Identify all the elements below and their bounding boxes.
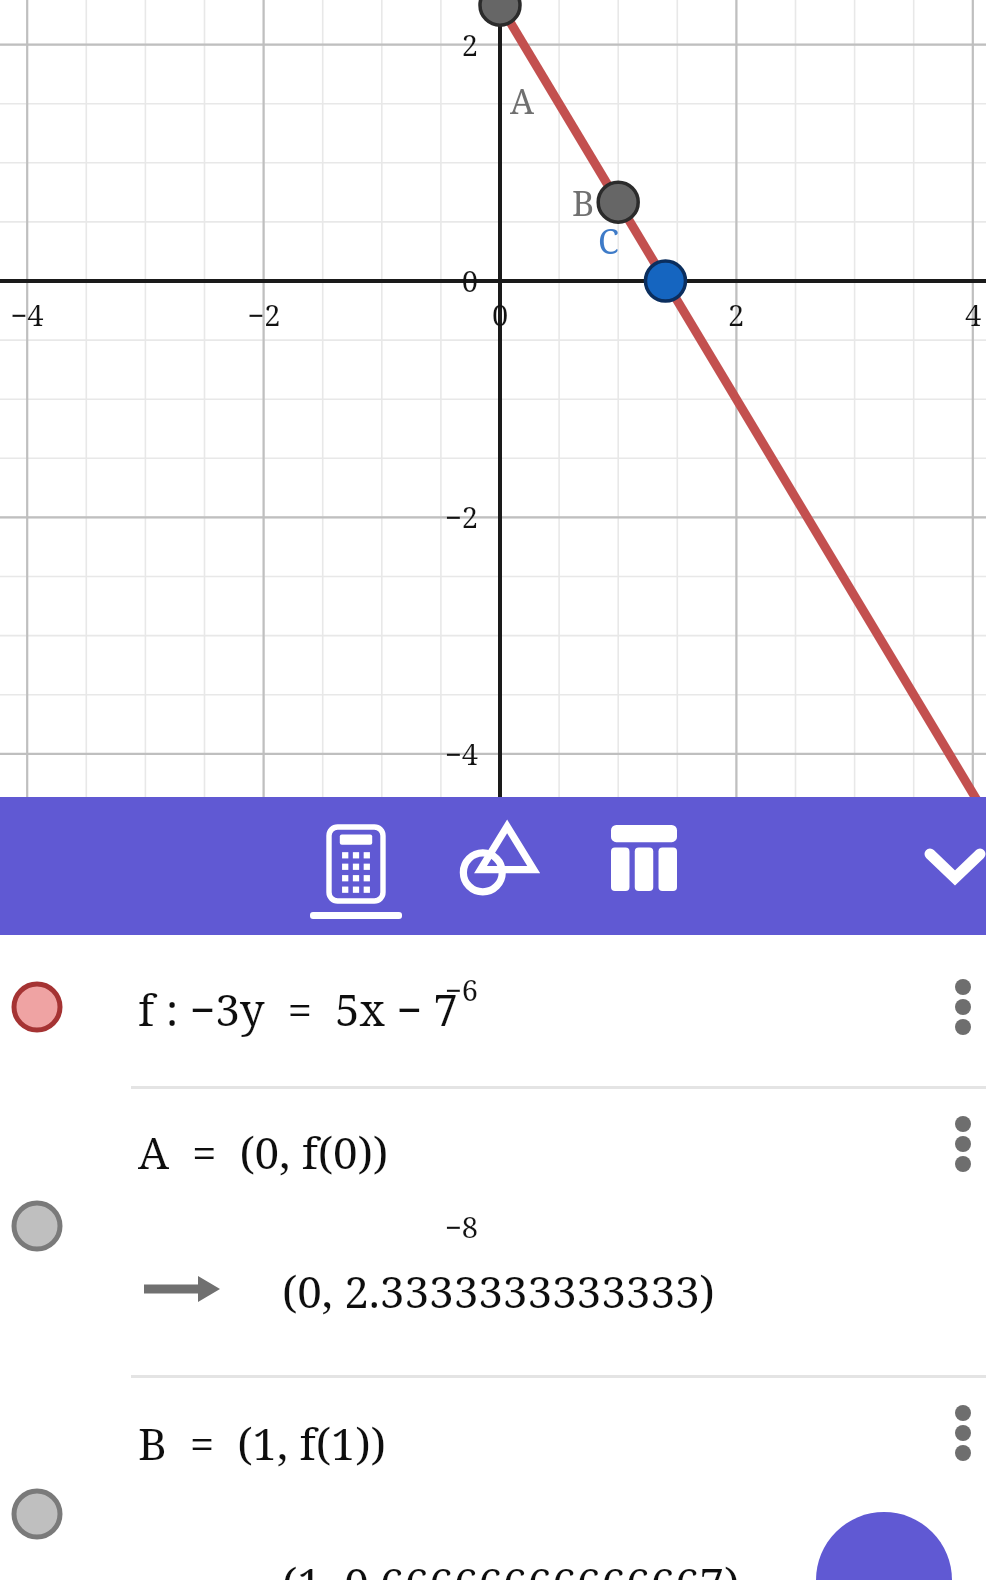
staticText: 0 <box>460 295 540 334</box>
button[interactable]: Toggle visibility <box>0 1375 986 1580</box>
staticText: −4 <box>390 734 478 773</box>
button[interactable]: Toggle visibility <box>0 1086 986 1376</box>
button[interactable]: Toggle visibility <box>0 935 986 1086</box>
staticText: B = (1, f(1)) <box>138 1413 386 1473</box>
staticText: 4 <box>933 295 986 334</box>
staticText: −8 <box>390 1207 478 1246</box>
staticText: −2 <box>390 497 478 536</box>
staticText: A <box>510 78 534 124</box>
button[interactable]: Collapse <box>905 816 986 916</box>
button[interactable]: More options <box>933 1108 986 1180</box>
button[interactable]: Toggle visibility <box>11 1200 63 1252</box>
staticText: 2 <box>390 25 478 64</box>
staticText: 0 <box>390 261 478 300</box>
staticText: 2 <box>696 295 776 334</box>
staticText: (0, 2.3333333333333) <box>282 1261 715 1321</box>
staticText: −2 <box>224 295 304 334</box>
button[interactable]: More options <box>933 971 986 1043</box>
button[interactable]: Toggle visibility <box>11 981 63 1033</box>
button[interactable]: Toggle visibility <box>11 1488 63 1540</box>
button[interactable]: More options <box>933 1397 986 1469</box>
staticText: −4 <box>0 295 67 334</box>
button[interactable]: Calculator <box>296 797 416 935</box>
staticText: (1, 0.66666666666667) <box>282 1553 740 1580</box>
button[interactable]: Add input <box>816 1512 952 1580</box>
staticText: −6 <box>390 970 478 1009</box>
button[interactable]: Geometry tools <box>438 797 558 935</box>
staticText: C <box>598 218 619 264</box>
staticText: f : −3y = 5x − 7 <box>138 979 458 1039</box>
button[interactable]: Table of values <box>584 797 704 935</box>
staticText: B <box>572 180 595 226</box>
staticText: A = (0, f(0)) <box>138 1122 389 1182</box>
